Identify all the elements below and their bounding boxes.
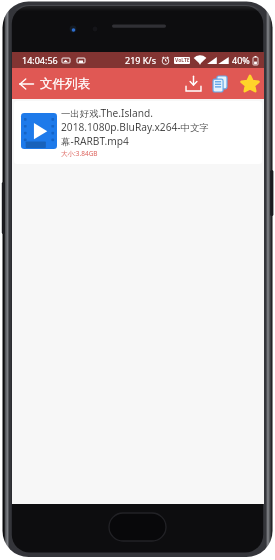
button[interactable]: 一出好戏.The.Island. [14,101,262,164]
staticText: 一出好戏.The.Island. [61,106,153,120]
staticText: VoLTE [175,57,190,64]
staticText: 大小:3.84GB [61,149,98,157]
staticText: 40% [232,54,250,66]
button[interactable]: Download [181,68,205,99]
button[interactable]: Back [12,68,40,99]
button[interactable]: Copy [205,68,235,99]
staticText: 文件列表 [40,76,90,92]
staticText: 14:04:56 [22,54,58,66]
button[interactable]: Favorite [235,68,264,99]
staticText: 幕-RARBT.mp4 [61,134,129,148]
staticText: 219 K/s [125,54,157,66]
staticText: 2018.1080p.BluRay.x264-中文字 [61,120,209,134]
